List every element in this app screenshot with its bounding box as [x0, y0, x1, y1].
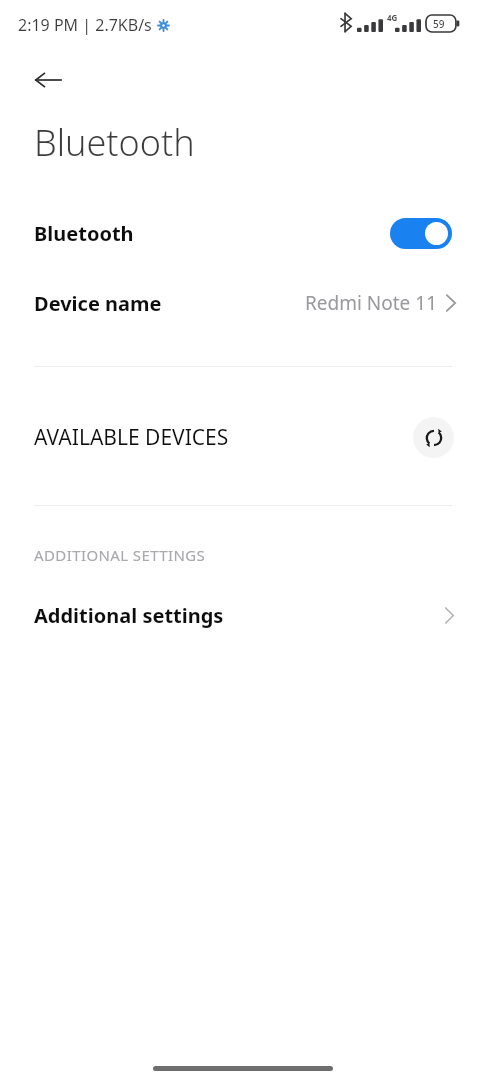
- button[interactable]: Refresh: [413, 417, 454, 458]
- staticText: Bluetooth: [34, 118, 195, 167]
- button[interactable]: Device name: [0, 272, 486, 334]
- staticText: Additional settings: [34, 602, 224, 629]
- staticText: AVAILABLE DEVICES: [34, 423, 229, 452]
- staticText: ADDITIONAL SETTINGS: [34, 545, 206, 565]
- staticText: Bluetooth: [34, 220, 134, 247]
- staticText: Redmi Note 11: [305, 290, 438, 316]
- button[interactable]: Bluetooth: [0, 200, 486, 266]
- staticText: 4G: [387, 12, 398, 23]
- staticText: Device name: [34, 290, 162, 317]
- button[interactable]: Back: [24, 56, 72, 104]
- button[interactable]: Bluetooth toggle: [390, 218, 452, 249]
- staticText: 2:19 PM | 2.7KB/s: [18, 14, 152, 36]
- button[interactable]: Additional settings: [0, 585, 486, 645]
- staticText: 59: [433, 17, 445, 31]
